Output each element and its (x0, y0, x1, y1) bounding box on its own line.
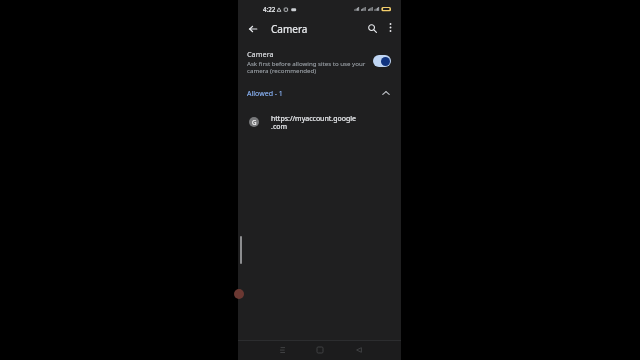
staticText: Ask first before allowing sites to use y… (247, 59, 373, 74)
staticText: https://myaccount.google (271, 114, 357, 124)
button[interactable]: G (238, 107, 401, 137)
button[interactable]: Camera (238, 44, 401, 80)
button[interactable]: Navigate up (240, 16, 265, 41)
staticText: Allowed - 1 (247, 89, 283, 99)
button[interactable]: Back (348, 340, 370, 359)
button[interactable]: More options (379, 16, 402, 39)
button[interactable]: Search (360, 16, 385, 41)
button[interactable]: Allowed - 1 (238, 83, 401, 103)
button[interactable]: Home (309, 340, 331, 359)
staticText: Camera (247, 49, 274, 59)
staticText: .com (271, 122, 288, 132)
button[interactable]: Recent apps (271, 340, 293, 359)
staticText: 4:22 (263, 5, 276, 13)
staticText: G (252, 118, 257, 126)
staticText: Camera (271, 22, 308, 36)
